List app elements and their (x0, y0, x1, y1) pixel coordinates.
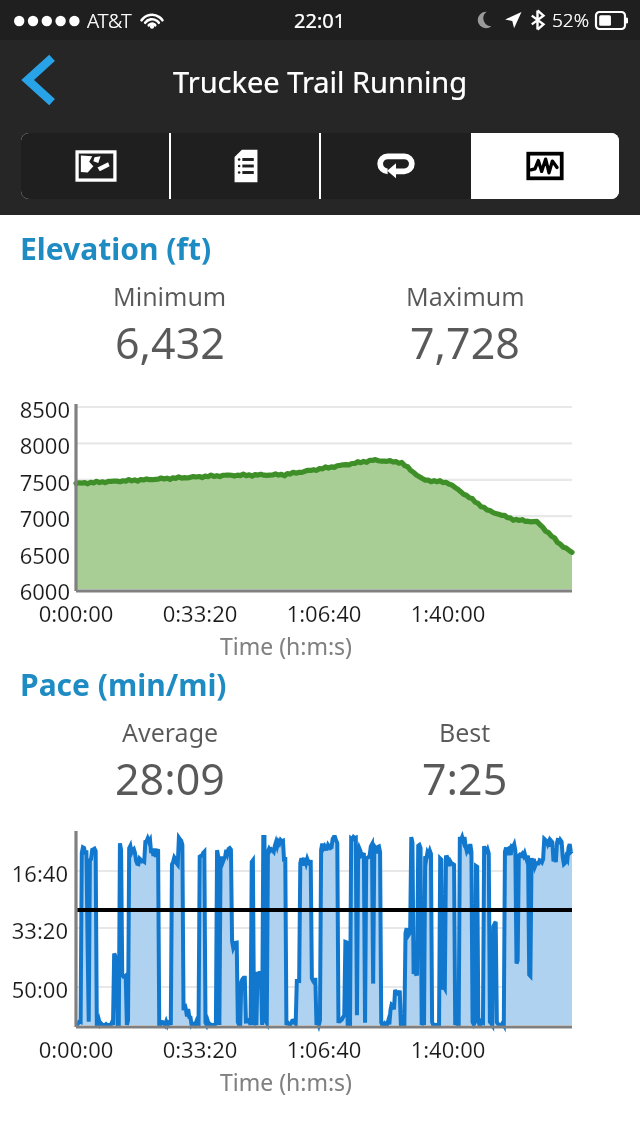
button[interactable]: Charts (471, 133, 619, 199)
staticText: 28:09 (115, 749, 225, 808)
staticText: 0:00:00 (16, 598, 136, 628)
staticText: 1:40:00 (388, 598, 508, 628)
staticText: 52% (552, 7, 590, 33)
staticText: 33:20 (2, 915, 68, 945)
staticText: 0:33:20 (140, 598, 260, 628)
staticText: 7,728 (410, 313, 520, 372)
staticText: 8500 (4, 394, 70, 424)
staticText: 7500 (4, 467, 70, 497)
staticText: 50:00 (2, 974, 68, 1004)
button[interactable]: Back (8, 44, 68, 116)
staticText: Pace (min/mi) (20, 664, 227, 705)
button[interactable]: Map (21, 133, 171, 199)
staticText: 0:33:20 (140, 1034, 260, 1064)
staticText: 1:40:00 (388, 1034, 508, 1064)
staticText: Time (h:m:s) (0, 1066, 572, 1097)
button[interactable]: Details (171, 133, 321, 199)
staticText: Time (h:m:s) (0, 630, 572, 661)
staticText: Minimum (113, 279, 227, 313)
staticText: 6,432 (115, 313, 225, 372)
staticText: 16:40 (2, 858, 68, 888)
staticText: 7:25 (422, 749, 508, 808)
staticText: 1:06:40 (264, 1034, 384, 1064)
staticText: 8000 (4, 430, 70, 460)
staticText: Average (122, 715, 219, 749)
staticText: 1:06:40 (264, 598, 384, 628)
staticText: AT&T (87, 7, 132, 34)
button[interactable]: Laps (321, 133, 471, 199)
staticText: 6500 (4, 540, 70, 570)
staticText: Elevation (ft) (20, 228, 212, 269)
staticText: Truckee Trail Running (173, 62, 468, 101)
staticText: 22:01 (294, 7, 346, 34)
staticText: 6000 (4, 576, 70, 606)
staticText: 0:00:00 (16, 1034, 136, 1064)
staticText: Best (439, 715, 491, 749)
staticText: Maximum (406, 279, 525, 313)
staticText: 7000 (4, 503, 70, 533)
